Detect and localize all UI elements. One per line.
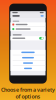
button[interactable] (10, 27, 45, 31)
staticText: Choose from a variety (1, 86, 55, 93)
staticText: of options (15, 93, 40, 100)
button[interactable] (10, 55, 45, 60)
button[interactable] (10, 22, 45, 27)
button[interactable] (10, 14, 45, 18)
button[interactable] (10, 66, 45, 71)
button[interactable] (10, 61, 45, 66)
button[interactable] (10, 50, 45, 55)
button[interactable] (10, 36, 45, 40)
